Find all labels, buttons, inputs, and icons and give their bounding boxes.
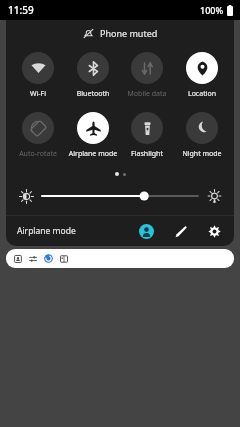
button[interactable]: Brightness slider <box>42 186 198 206</box>
button[interactable]: Wi-Fi <box>12 52 64 99</box>
button[interactable]: Edit tiles <box>169 220 191 242</box>
button[interactable]: Airplane mode <box>17 225 76 237</box>
button[interactable]: User account <box>135 220 157 242</box>
staticText: 11:59 <box>8 3 34 17</box>
staticText: 100% <box>200 4 224 16</box>
button[interactable]: Phone muted <box>6 20 234 46</box>
staticText: Location <box>176 89 228 99</box>
button[interactable]: Mobile data <box>121 52 173 99</box>
button[interactable]: Settings <box>203 220 225 242</box>
staticText: Phone muted <box>100 27 158 39</box>
button[interactable]: Location <box>176 52 228 99</box>
staticText: Airplane mode <box>17 225 76 237</box>
button[interactable] <box>6 249 234 268</box>
staticText: Mobile data <box>121 89 173 99</box>
staticText: Airplane mode <box>67 149 119 159</box>
button[interactable]: Night mode <box>176 112 228 159</box>
staticText: Bluetooth <box>67 89 119 99</box>
staticText: Auto-rotate <box>12 149 64 159</box>
staticText: Flashlight <box>121 149 173 159</box>
button[interactable]: Airplane mode <box>67 112 119 159</box>
staticText: Night mode <box>176 149 228 159</box>
button[interactable]: Auto-rotate <box>12 112 64 159</box>
button[interactable]: Bluetooth <box>67 52 119 99</box>
button[interactable]: Flashlight <box>121 112 173 159</box>
button[interactable]: Auto brightness <box>204 186 224 206</box>
staticText: Wi-Fi <box>12 89 64 99</box>
button[interactable]: Decrease brightness <box>16 186 36 206</box>
